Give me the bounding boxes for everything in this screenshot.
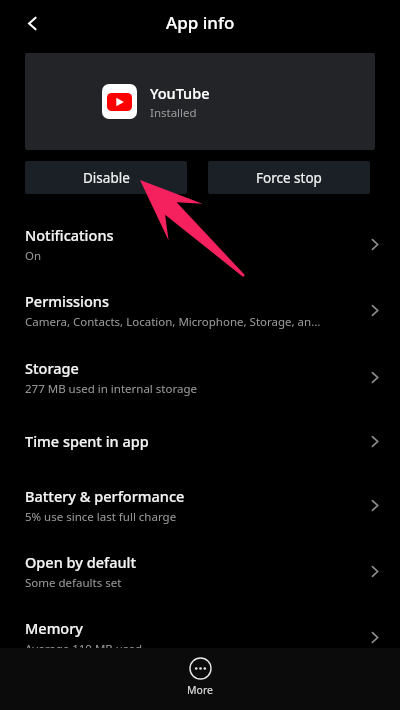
staticText: Open by default — [25, 552, 137, 572]
button[interactable]: Notifications — [0, 211, 400, 277]
staticText: On — [25, 248, 42, 264]
staticText: Storage — [25, 358, 79, 378]
staticText: Battery & performance — [25, 486, 185, 506]
staticText: Disable — [83, 169, 130, 187]
staticText: Force stop — [256, 169, 322, 187]
staticText: Notifications — [25, 225, 114, 245]
staticText: YouTube — [150, 83, 210, 103]
staticText: Permissions — [25, 291, 109, 311]
staticText: Some defaults set — [25, 575, 122, 591]
staticText: Camera, Contacts, Location, Microphone, … — [25, 314, 321, 330]
button[interactable]: YouTube — [25, 53, 375, 150]
button[interactable]: Open by default — [0, 538, 400, 604]
staticText: App info — [166, 11, 235, 34]
button[interactable]: Disable — [25, 161, 187, 194]
button[interactable]: Permissions — [0, 277, 400, 344]
staticText: Memory — [25, 618, 84, 638]
staticText: Average 110 MB used — [25, 641, 142, 657]
staticText: Time spent in app — [25, 431, 149, 451]
staticText: 277 MB used in internal storage — [25, 381, 197, 397]
staticText: 5% use since last full charge — [25, 509, 177, 525]
button[interactable]: More — [167, 654, 233, 700]
button[interactable]: Memory — [0, 604, 400, 670]
button[interactable]: Force stop — [208, 161, 370, 194]
button[interactable]: Time spent in app — [0, 410, 400, 472]
staticText: More — [187, 683, 213, 697]
button[interactable]: Battery & performance — [0, 472, 400, 538]
staticText: Installed — [150, 105, 197, 121]
button[interactable]: Back — [15, 6, 49, 40]
button[interactable]: Storage — [0, 344, 400, 410]
